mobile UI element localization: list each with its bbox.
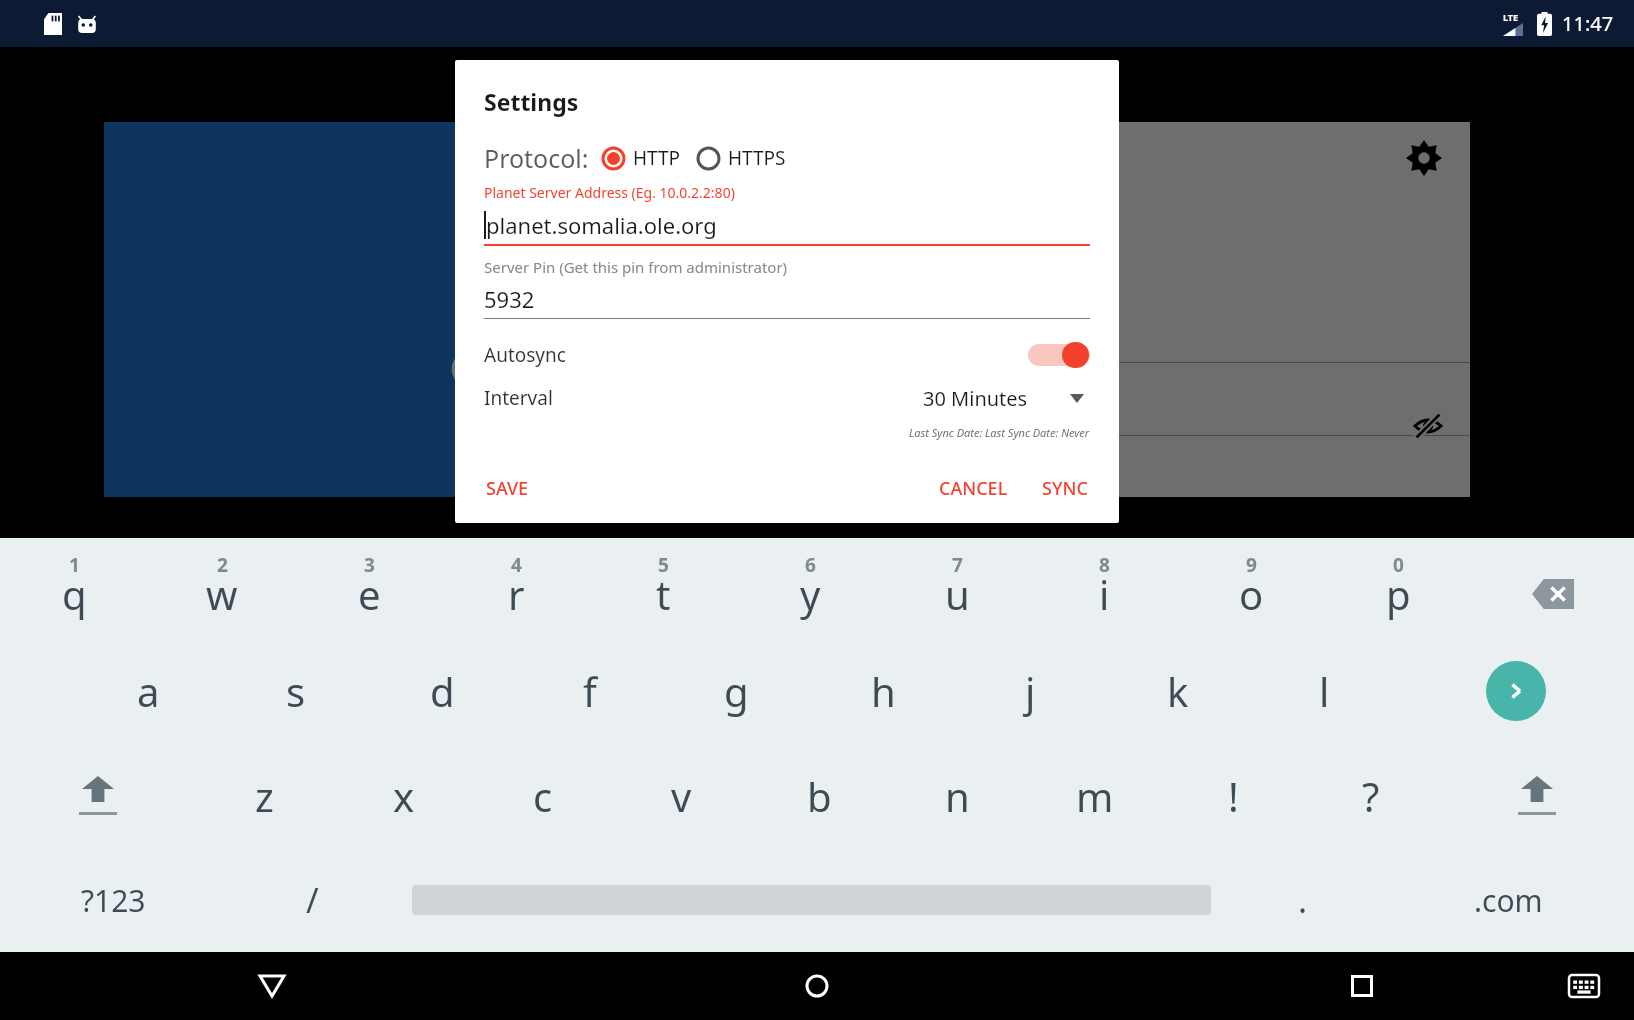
button[interactable]: SAVE — [484, 472, 531, 505]
button[interactable]: d — [369, 638, 516, 743]
staticText: e — [358, 567, 381, 621]
button[interactable]: c — [473, 743, 612, 848]
button[interactable]: f — [516, 638, 663, 743]
staticText: 3 — [364, 552, 375, 578]
button[interactable]: g — [663, 638, 810, 743]
button[interactable]: planet.somalia.ole.org — [484, 210, 1090, 240]
button[interactable]: ? — [1302, 743, 1440, 848]
staticText: SAVE — [486, 476, 529, 501]
staticText: 8 — [1099, 552, 1110, 578]
staticText: y — [800, 567, 821, 621]
staticText: a — [137, 664, 160, 718]
staticText: q — [62, 567, 87, 621]
button[interactable]: SYNC — [1040, 472, 1090, 505]
button[interactable]: l — [1251, 638, 1398, 743]
staticText: My Planet — [499, 460, 599, 487]
staticText: 6 — [805, 552, 816, 578]
button[interactable]: Shift — [0, 743, 195, 848]
button[interactable]: Space — [399, 848, 1223, 952]
button[interactable]: 5932 — [484, 284, 1090, 314]
staticText: HTTPS — [728, 145, 786, 171]
button[interactable]: Enter — [1398, 638, 1634, 743]
staticText: r — [508, 567, 525, 621]
button[interactable]: 1 — [0, 538, 148, 638]
button[interactable]: .com — [1382, 848, 1634, 952]
staticText: p — [1386, 567, 1411, 621]
button[interactable]: a — [75, 638, 222, 743]
staticText: 1 — [69, 552, 80, 578]
staticText: 7 — [952, 552, 963, 578]
button[interactable]: . — [1223, 848, 1382, 952]
staticText: z — [255, 769, 274, 823]
staticText: h — [871, 664, 896, 718]
button[interactable]: x — [334, 743, 473, 848]
button[interactable]: CANCEL — [937, 472, 1010, 505]
button[interactable]: ?123 — [0, 848, 226, 952]
button[interactable]: HTTPS — [696, 145, 786, 171]
staticText: SYNC — [1042, 476, 1088, 501]
button[interactable]: h — [810, 638, 957, 743]
staticText: .com — [1474, 880, 1543, 921]
staticText: t — [656, 567, 671, 621]
button[interactable]: Hide password — [1408, 406, 1448, 446]
button[interactable]: 9 — [1178, 538, 1325, 638]
staticText: planet.somalia.ole.org — [486, 210, 717, 240]
button[interactable]: 3 — [296, 538, 443, 638]
staticText: o — [1239, 567, 1264, 621]
staticText: Settings — [484, 86, 579, 117]
button[interactable]: Settings — [1402, 136, 1446, 180]
button[interactable]: 7 — [884, 538, 1031, 638]
button[interactable]: Switch keyboard — [1564, 966, 1604, 1006]
button[interactable]: s — [222, 638, 369, 743]
staticText: LTE — [1503, 11, 1519, 23]
button[interactable]: Shift — [1440, 743, 1634, 848]
button[interactable]: Recents — [1089, 952, 1634, 1020]
button[interactable]: Autosync — [484, 335, 1090, 375]
button[interactable]: Interval — [484, 379, 1090, 417]
staticText: x — [393, 769, 415, 823]
staticText: ! — [1228, 769, 1239, 823]
button[interactable]: Home — [544, 952, 1089, 1020]
staticText: . — [1298, 877, 1308, 923]
staticText: / — [306, 877, 319, 923]
staticText: d — [430, 664, 455, 718]
button[interactable]: Back — [0, 952, 544, 1020]
button[interactable]: z — [195, 743, 334, 848]
staticText: 30 Minutes — [923, 385, 1028, 412]
staticText: 5 — [658, 552, 669, 578]
button[interactable]: b — [750, 743, 888, 848]
staticText: 2 — [217, 552, 228, 578]
button[interactable]: 4 — [443, 538, 590, 638]
button[interactable]: 2 — [148, 538, 296, 638]
staticText: 4 — [511, 552, 522, 578]
staticText: ?123 — [81, 880, 146, 921]
button[interactable]: Backspace — [1472, 538, 1634, 638]
staticText: Planet Server Address (Eg. 10.0.2.2:80) — [484, 183, 735, 202]
staticText: j — [1025, 664, 1036, 718]
staticText: w — [206, 567, 238, 621]
button[interactable]: / — [226, 848, 399, 952]
button[interactable]: 6 — [737, 538, 884, 638]
staticText: 0 — [1393, 552, 1404, 578]
staticText: l — [1319, 664, 1330, 718]
staticText: Interval — [484, 385, 553, 411]
staticText: c — [533, 769, 553, 823]
button[interactable]: m — [1026, 743, 1164, 848]
staticText: n — [945, 769, 970, 823]
button[interactable]: 8 — [1031, 538, 1178, 638]
button[interactable]: n — [888, 743, 1026, 848]
staticText: Last Sync Date: Last Sync Date: Never — [909, 425, 1090, 440]
staticText: Autosync — [484, 342, 566, 368]
button[interactable]: v — [612, 743, 750, 848]
staticText: v — [671, 769, 692, 823]
button[interactable]: 0 — [1325, 538, 1472, 638]
staticText: CANCEL — [939, 476, 1008, 501]
staticText: Server Pin (Get this pin from administra… — [484, 257, 788, 277]
staticText: 5932 — [484, 284, 535, 314]
button[interactable]: 5 — [590, 538, 737, 638]
button[interactable]: HTTP — [601, 145, 681, 171]
button[interactable]: ! — [1164, 743, 1302, 848]
button[interactable]: k — [1104, 638, 1251, 743]
staticText: k — [1167, 664, 1189, 718]
button[interactable]: j — [957, 638, 1104, 743]
